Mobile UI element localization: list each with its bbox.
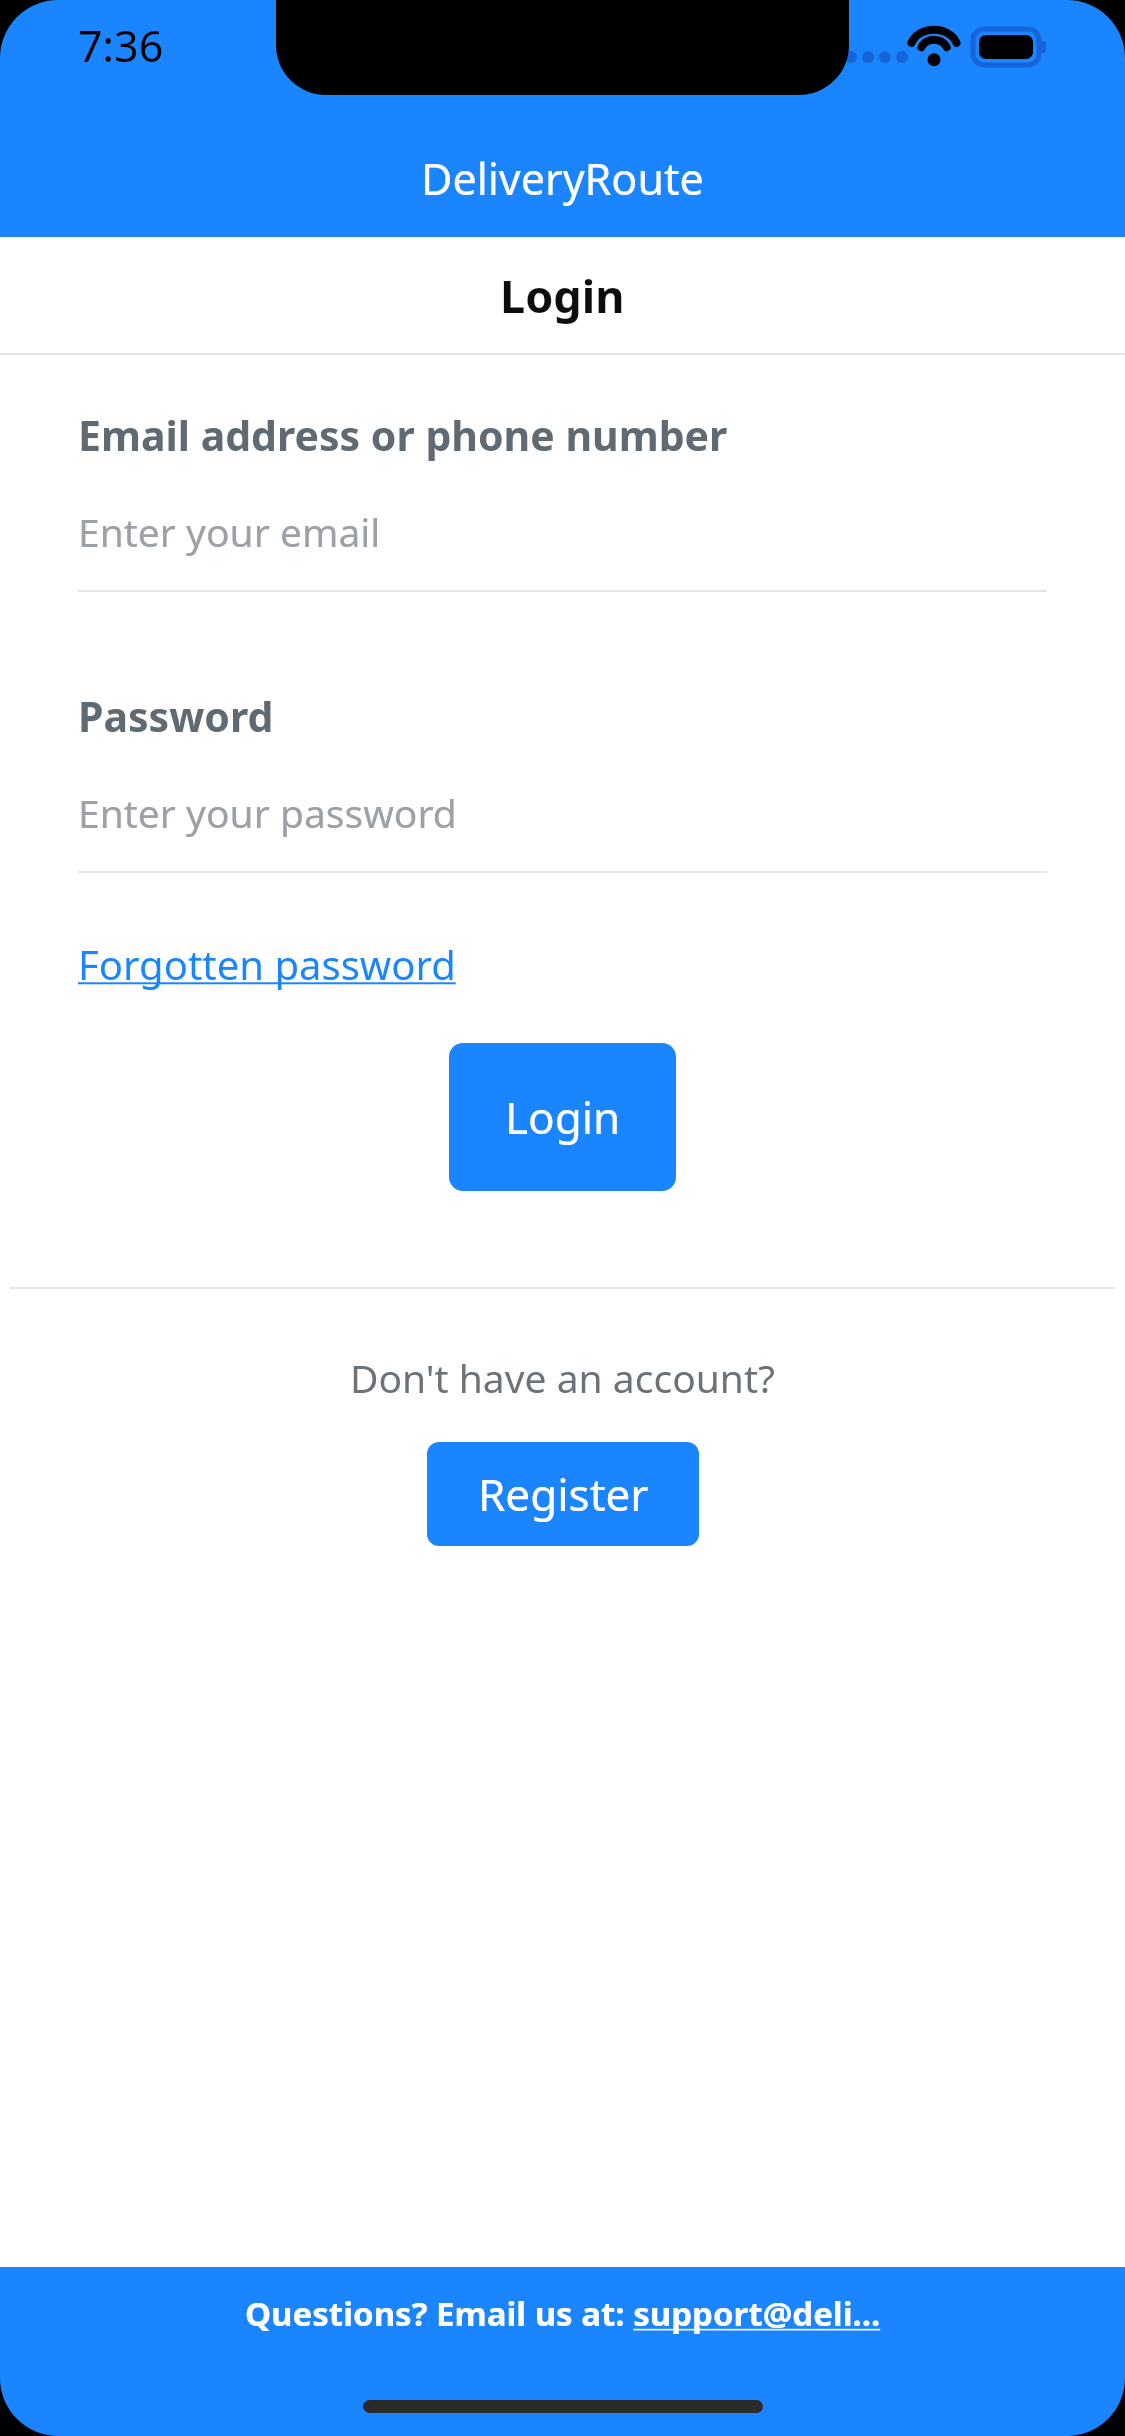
button[interactable]: Login (449, 1043, 676, 1191)
staticText: Enter your password (78, 786, 457, 839)
button[interactable]: Forgotten password (72, 929, 462, 999)
button[interactable]: Register (427, 1442, 699, 1546)
button[interactable]: Enter your password (78, 786, 1047, 839)
staticText: Password (78, 688, 274, 744)
other: Signal (843, 24, 899, 70)
other: Wi-Fi (909, 24, 959, 70)
staticText: Don't have an account? (350, 1351, 775, 1404)
staticText: Login (500, 265, 625, 326)
staticText: Enter your email (78, 505, 381, 558)
staticText: DeliveryRoute (421, 149, 704, 208)
other: Battery (973, 24, 1049, 70)
button[interactable]: Questions? Email us at: support@deli... (0, 2267, 1125, 2436)
staticText: 7:36 (78, 16, 164, 75)
staticText: Questions? Email us at: support@deli... (245, 2291, 881, 2336)
staticText: Email address or phone number (78, 407, 728, 463)
button[interactable]: Enter your email (78, 505, 1047, 558)
staticText: Forgotten password (78, 937, 456, 991)
staticText: Register (478, 1464, 649, 1524)
staticText: Login (505, 1087, 621, 1147)
